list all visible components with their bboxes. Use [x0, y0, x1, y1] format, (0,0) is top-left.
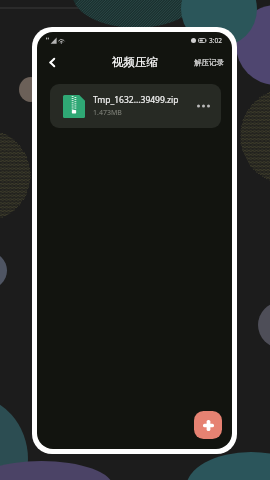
button[interactable]: Back	[41, 51, 63, 73]
staticText: 解压记录	[194, 58, 224, 67]
staticText: Tmp_1632...39499.zip	[93, 94, 179, 106]
staticText: 1.473MB	[93, 108, 122, 118]
button[interactable]: More options	[193, 96, 213, 116]
button[interactable]: Tmp_1632...39499.zip	[50, 84, 221, 128]
button[interactable]: Add	[194, 411, 222, 439]
staticText: 视频压缩	[112, 55, 158, 69]
button[interactable]: 解压记录	[186, 54, 232, 71]
staticText: 3:02	[209, 36, 222, 45]
